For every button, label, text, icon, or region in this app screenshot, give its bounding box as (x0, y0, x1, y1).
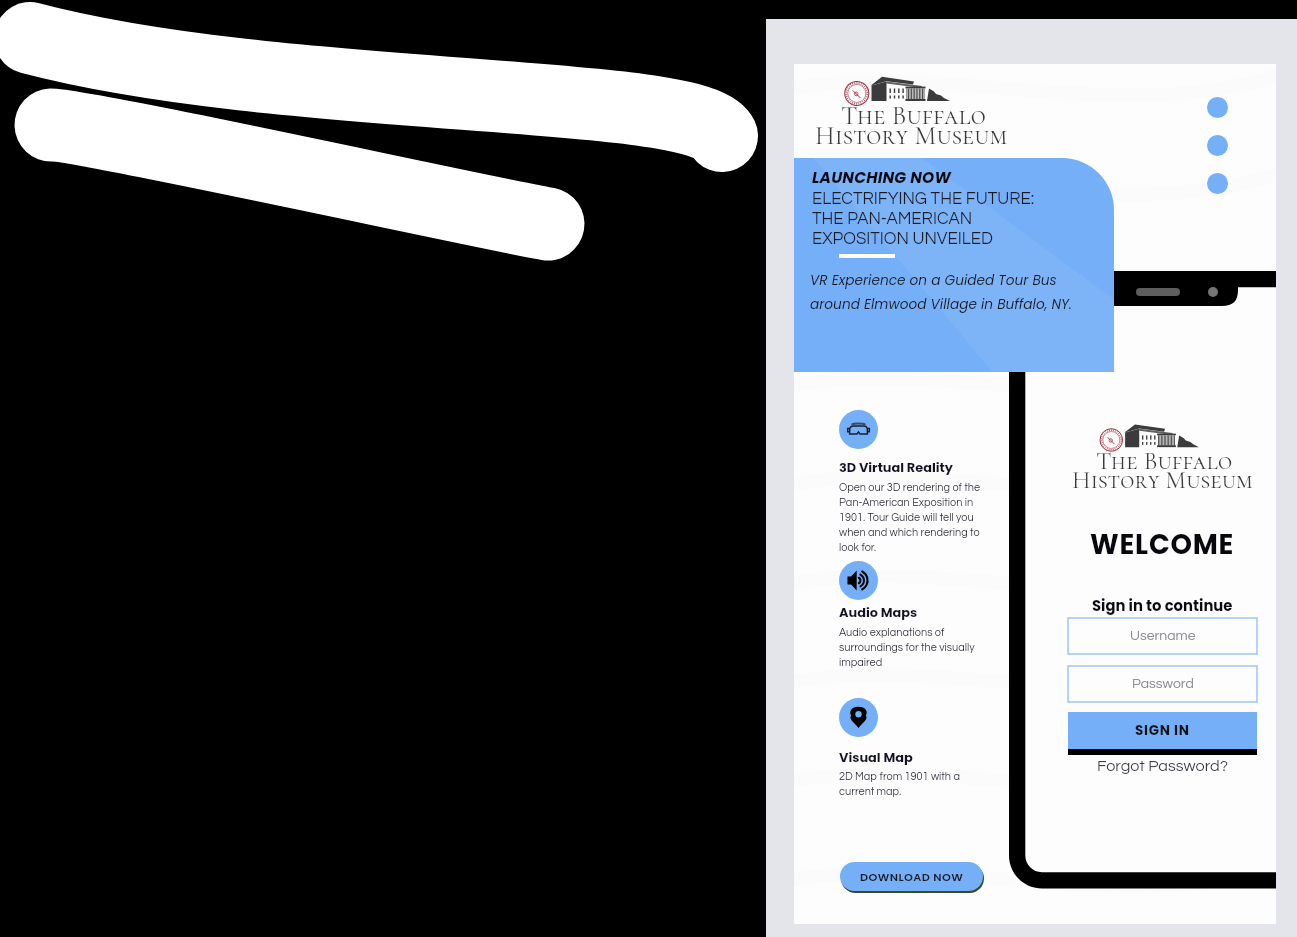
staticText: ELECTRIFYING THE FUTURE: THE PAN-AMERICA… (812, 190, 1035, 247)
staticText: History Museum (1072, 465, 1254, 495)
button[interactable]: Audio Maps (839, 561, 878, 600)
staticText: VR Experience on a Guided Tour Bus aroun… (810, 271, 1072, 314)
button[interactable]: Menu (1207, 135, 1228, 156)
staticText: Sign in to continue (1092, 595, 1233, 616)
button[interactable]: Menu (1207, 97, 1228, 118)
staticText: Password (1132, 677, 1194, 691)
staticText: 3D Virtual Reality (839, 458, 953, 476)
staticText: Open our 3D rendering of the Pan-America… (839, 482, 981, 553)
button[interactable]: 3D Virtual Reality (839, 410, 878, 449)
button[interactable]: Password (1068, 666, 1257, 702)
button[interactable]: Username (1068, 618, 1257, 654)
staticText: The Buffalo (1096, 446, 1233, 476)
staticText: Visual Map (839, 748, 913, 766)
staticText: SIGN IN (1135, 721, 1190, 740)
staticText: Audio Maps (839, 603, 918, 621)
staticText: LAUNCHING NOW (812, 167, 951, 189)
staticText: History Museum (815, 120, 1008, 151)
staticText: 2D Map from 1901 with a current map. (839, 771, 960, 797)
staticText: DOWNLOAD NOW (860, 869, 964, 885)
button[interactable]: Visual Map (839, 698, 878, 737)
button[interactable]: Forgot Password? (1097, 758, 1228, 775)
staticText: Audio explanations of surroundings for t… (839, 627, 975, 668)
button[interactable]: SIGN IN (1068, 712, 1257, 749)
staticText: Username (1130, 629, 1196, 643)
button[interactable]: DOWNLOAD NOW (840, 862, 983, 891)
button[interactable]: Menu (1207, 173, 1228, 194)
staticText: WELCOME (1090, 525, 1235, 563)
staticText: The Buffalo (841, 100, 986, 131)
